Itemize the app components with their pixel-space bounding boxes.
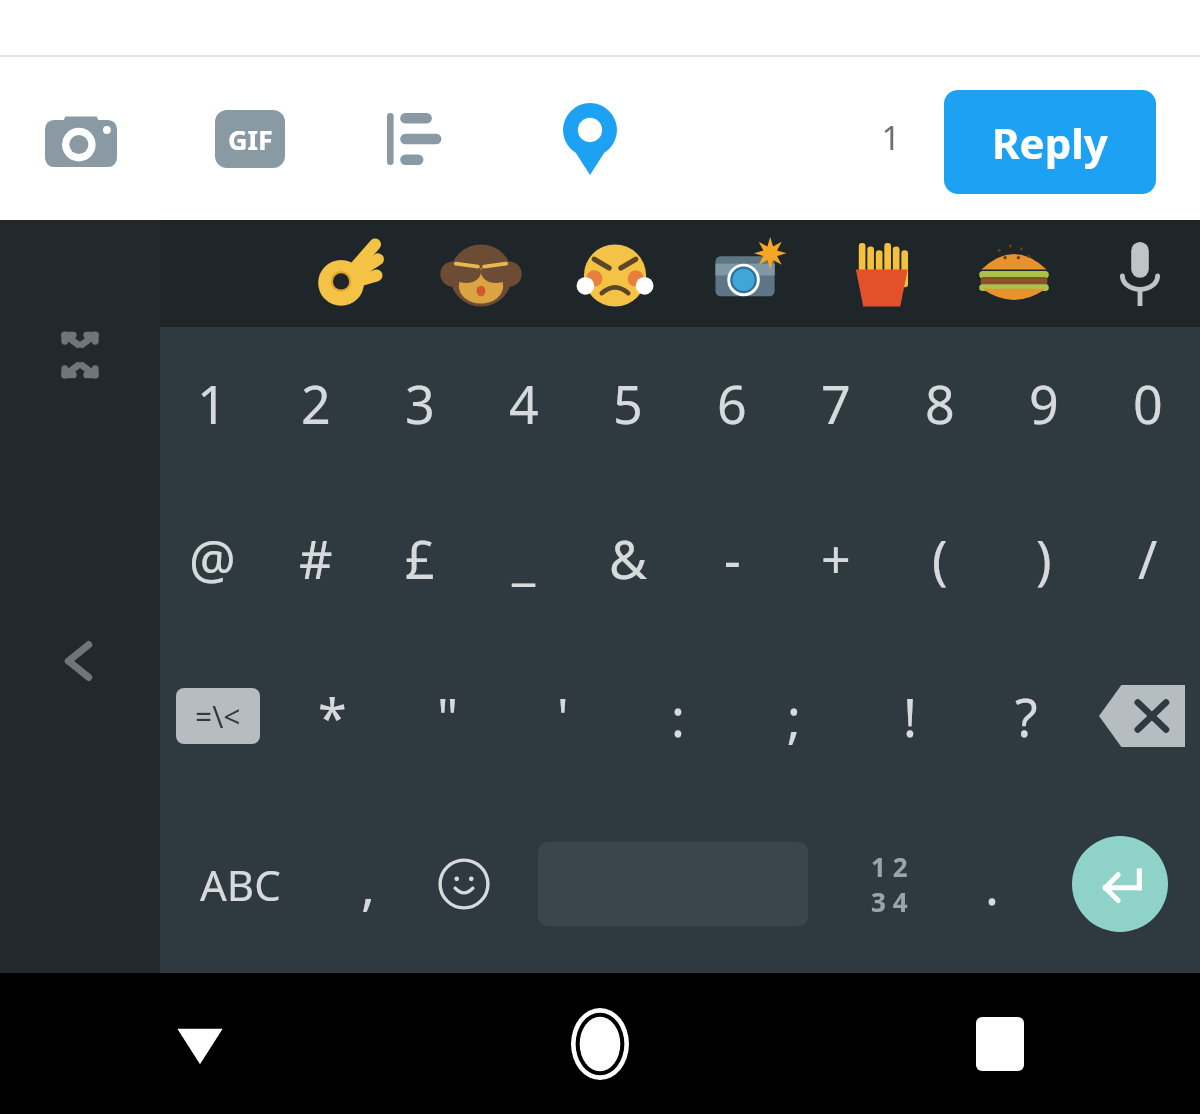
staticText: 2	[301, 368, 331, 439]
button[interactable]: *	[275, 637, 390, 795]
button[interactable]: _	[472, 479, 576, 637]
button[interactable]: Voice input	[1080, 220, 1200, 327]
staticText: !	[903, 681, 917, 752]
button[interactable]: Back	[0, 973, 400, 1114]
staticText: )	[1036, 523, 1052, 594]
button[interactable]: Recents	[800, 973, 1200, 1114]
staticText: "	[437, 681, 459, 752]
button[interactable]: /	[1096, 479, 1200, 637]
button[interactable]: 8	[888, 327, 992, 479]
staticText: Reply	[992, 114, 1108, 171]
button[interactable]: '	[505, 637, 620, 795]
button[interactable]: 4	[472, 327, 576, 479]
button[interactable]: Add poll	[373, 95, 467, 183]
staticText: (	[932, 523, 948, 594]
staticText: .	[985, 849, 999, 920]
staticText: '	[557, 681, 569, 752]
staticText: ?	[1015, 681, 1038, 752]
button[interactable]: see no evil	[414, 220, 548, 327]
staticText: ,	[361, 849, 375, 920]
button[interactable]: )	[992, 479, 1096, 637]
staticText: 9	[1029, 368, 1059, 439]
button[interactable]: ?	[968, 637, 1084, 795]
staticText: =\<	[195, 696, 241, 737]
staticText: +	[821, 523, 851, 594]
button[interactable]: 3	[368, 327, 472, 479]
button[interactable]: &	[576, 479, 680, 637]
staticText: 1	[866, 115, 916, 160]
staticText: ;	[787, 681, 801, 752]
button[interactable]: #	[264, 479, 368, 637]
button[interactable]: 7	[784, 327, 888, 479]
button[interactable]: More symbols	[160, 637, 275, 795]
staticText: £	[405, 523, 435, 594]
staticText: 0	[1133, 368, 1163, 439]
staticText: 1	[197, 368, 227, 439]
staticText: -	[724, 523, 741, 594]
button[interactable]: +	[784, 479, 888, 637]
button[interactable]: Emoji	[416, 795, 512, 973]
button[interactable]: (	[888, 479, 992, 637]
button[interactable]: camera flash	[681, 220, 814, 327]
staticText: @	[189, 523, 236, 594]
staticText: #	[299, 523, 333, 594]
staticText: 5	[613, 368, 643, 439]
button[interactable]: burger	[947, 220, 1080, 327]
staticText: ABC	[200, 856, 281, 913]
staticText: *	[318, 681, 347, 752]
staticText: 3	[405, 368, 435, 439]
button[interactable]: :	[620, 637, 736, 795]
button[interactable]: Expand keyboard	[32, 307, 128, 403]
button[interactable]: ok	[280, 220, 414, 327]
button[interactable]: 0	[1096, 327, 1200, 479]
button[interactable]: Numbers	[834, 795, 944, 973]
button[interactable]: 1	[160, 327, 264, 479]
button[interactable]: -	[680, 479, 784, 637]
staticText: 6	[717, 368, 747, 439]
button[interactable]: angry	[548, 220, 681, 327]
button[interactable]: 2	[264, 327, 368, 479]
button[interactable]: Reply	[944, 90, 1156, 194]
button[interactable]: ,	[320, 795, 416, 973]
button[interactable]: Backspace	[1084, 637, 1200, 795]
button[interactable]: Home	[400, 973, 800, 1114]
button[interactable]: Enter	[1072, 836, 1168, 932]
button[interactable]: !	[852, 637, 968, 795]
button[interactable]: Add location	[543, 95, 637, 183]
button[interactable]: 6	[680, 327, 784, 479]
staticText: &	[609, 523, 648, 594]
button[interactable]: ;	[736, 637, 852, 795]
staticText: 3 4	[871, 884, 908, 919]
staticText: :	[671, 681, 685, 752]
button[interactable]: .	[944, 795, 1040, 973]
staticText: _	[512, 523, 536, 594]
staticText: 4	[509, 368, 539, 439]
button[interactable]: @	[160, 479, 264, 637]
button[interactable]: 5	[576, 327, 680, 479]
button[interactable]: £	[368, 479, 472, 637]
button[interactable]: Add GIF	[203, 95, 297, 183]
staticText: 1 2	[871, 849, 908, 884]
button[interactable]: Previous	[32, 613, 128, 709]
button[interactable]: "	[390, 637, 505, 795]
button[interactable]: Add photo	[34, 95, 128, 183]
button[interactable]: 9	[992, 327, 1096, 479]
staticText: /	[1138, 523, 1158, 594]
staticText: GIF	[228, 121, 273, 158]
staticText: 7	[821, 368, 851, 439]
button[interactable]: fries	[814, 220, 947, 327]
staticText: 8	[925, 368, 955, 439]
button[interactable]: ABC	[160, 795, 320, 973]
